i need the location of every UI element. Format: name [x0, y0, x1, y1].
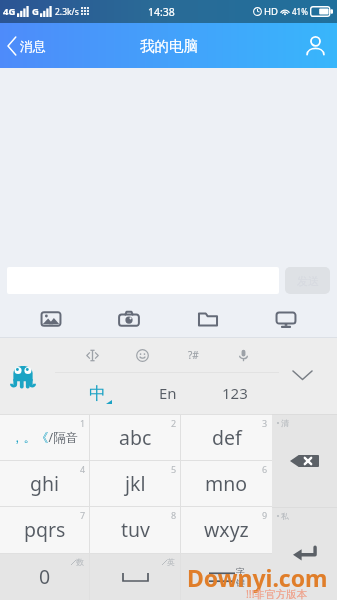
staticText: 5: [171, 463, 177, 475]
staticText: ghi: [30, 470, 60, 497]
staticText: 3: [262, 417, 268, 429]
staticText: 14:38: [148, 5, 175, 19]
button[interactable]: ghi: [0, 460, 90, 506]
button[interactable]: wxyz: [181, 506, 272, 553]
staticText: En: [159, 383, 177, 403]
button[interactable]: 字: [181, 553, 272, 600]
staticText: 123: [222, 383, 248, 403]
button[interactable]: Send image: [24, 300, 78, 338]
button[interactable]: jkl: [90, 460, 181, 506]
staticText: 中: [89, 383, 106, 404]
button[interactable]: ，。《/隔音: [0, 414, 90, 460]
staticText: 我的电脑: [140, 37, 198, 55]
button[interactable]: tuv: [90, 506, 181, 553]
button[interactable]: def: [181, 414, 272, 460]
staticText: abc: [119, 424, 152, 451]
button[interactable]: 123: [213, 377, 257, 409]
staticText: wxyz: [204, 516, 249, 543]
staticText: ?#: [188, 348, 199, 362]
button[interactable]: Contact profile: [293, 23, 337, 68]
staticText: mno: [205, 470, 248, 497]
staticText: 键: [236, 577, 245, 588]
staticText: HD: [264, 5, 278, 18]
staticText: 数: [76, 557, 84, 567]
button[interactable]: Input method settings: [4, 357, 42, 395]
staticText: def: [212, 424, 242, 451]
button[interactable]: En: [146, 377, 190, 409]
staticText: 8: [171, 509, 177, 521]
staticText: ，。《/隔音: [11, 429, 79, 446]
button[interactable]: pqrs: [0, 506, 90, 553]
staticText: 41%: [292, 6, 308, 17]
staticText: 6: [262, 463, 268, 475]
staticText: 字: [236, 566, 245, 577]
staticText: tuv: [121, 516, 150, 543]
button[interactable]: abc: [90, 414, 181, 460]
button[interactable]: 中: [78, 377, 122, 409]
staticText: 9: [262, 509, 268, 521]
staticText: !!!非官方版本: [246, 587, 307, 600]
staticText: Downyi.com: [187, 562, 328, 593]
staticText: 1: [80, 417, 86, 429]
staticText: 私: [281, 511, 289, 521]
staticText: 4: [80, 463, 86, 475]
button[interactable]: Move cursor: [79, 342, 105, 368]
staticText: G: [32, 5, 39, 18]
button[interactable]: Voice input: [230, 342, 256, 368]
button[interactable]: Backspace: [272, 414, 337, 507]
button[interactable]: Hide keyboard: [285, 358, 319, 392]
button[interactable]: Emoji: [129, 342, 155, 368]
button[interactable]: mno: [181, 460, 272, 506]
button[interactable]: Remote desktop: [259, 300, 313, 338]
button[interactable]: Enter: [272, 507, 337, 600]
staticText: 7: [80, 509, 86, 521]
staticText: 消息: [20, 38, 46, 54]
staticText: jkl: [125, 470, 146, 497]
staticText: 2.3k/s: [55, 6, 79, 18]
button[interactable]: 0: [0, 553, 90, 600]
staticText: 4G: [3, 5, 16, 18]
staticText: 清: [281, 418, 289, 428]
staticText: 2: [171, 417, 177, 429]
staticText: pqrs: [24, 516, 66, 543]
staticText: 0: [39, 563, 51, 590]
button[interactable]: Send file: [181, 300, 235, 338]
button[interactable]: Symbols: [180, 342, 206, 368]
staticText: 英: [167, 557, 175, 567]
button[interactable]: 消息: [0, 23, 56, 68]
button[interactable]: 英: [90, 553, 181, 600]
button[interactable]: Take photo: [102, 300, 156, 338]
